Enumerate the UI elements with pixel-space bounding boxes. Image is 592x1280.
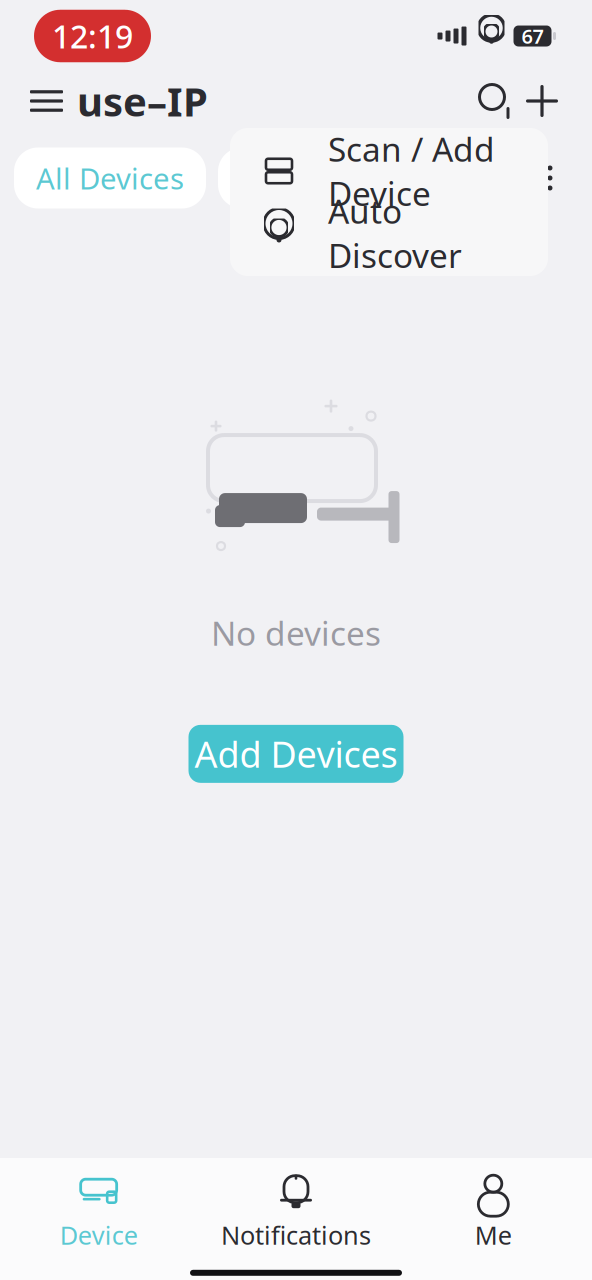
- staticText: 12:19: [52, 15, 133, 57]
- button[interactable]: Scan / Add Device: [230, 140, 548, 202]
- staticText: Select: [240, 158, 323, 197]
- staticText: 67: [521, 23, 543, 49]
- button[interactable]: Device: [0, 1164, 197, 1262]
- staticText: All Devices: [36, 158, 184, 197]
- button[interactable]: use–IP: [0, 64, 208, 137]
- staticText: No devices: [211, 611, 381, 655]
- button[interactable]: Add Devices: [188, 725, 403, 783]
- staticText: Device: [60, 1218, 138, 1252]
- staticText: Scan / Add Device: [328, 127, 495, 215]
- button[interactable]: Add: [518, 77, 566, 125]
- button[interactable]: Me: [395, 1164, 592, 1262]
- button[interactable]: More options: [528, 154, 572, 202]
- button[interactable]: Search: [474, 79, 518, 123]
- staticText: Notifications: [221, 1218, 371, 1252]
- button[interactable]: Select: [218, 147, 345, 208]
- button[interactable]: Auto Discover: [230, 202, 548, 264]
- staticText: Auto Discover: [328, 189, 462, 277]
- staticText: use–IP: [77, 74, 208, 127]
- staticText: Me: [475, 1218, 512, 1252]
- staticText: Add Devices: [194, 730, 397, 778]
- button[interactable]: All Devices: [14, 147, 206, 208]
- button[interactable]: Notifications: [197, 1164, 395, 1262]
